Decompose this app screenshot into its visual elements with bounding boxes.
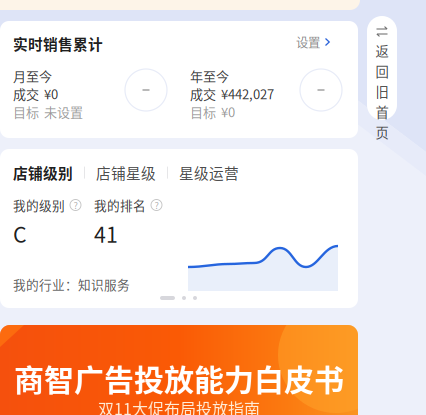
button[interactable]: 店铺星级 [96, 162, 156, 183]
button[interactable]: 店铺级别 [13, 162, 73, 183]
staticText: 目标 [190, 102, 216, 121]
staticText: 返 [375, 41, 388, 60]
staticText: 成交 [190, 84, 216, 103]
staticText: 年至今 [190, 66, 229, 85]
staticText: 双11大促布局投放指南 [98, 396, 260, 415]
staticText: C [13, 218, 27, 249]
staticText: ? [73, 198, 77, 212]
staticText: 目标 [13, 102, 39, 121]
staticText: 星级运营 [179, 162, 239, 183]
staticText: ¥442,027 [221, 84, 274, 103]
staticText: 页 [375, 122, 388, 141]
staticText: 回 [375, 61, 388, 81]
staticText: 我的级别 [13, 196, 65, 214]
staticText: 首 [375, 102, 388, 121]
staticText: ¥0 [221, 102, 235, 121]
staticText: 店铺级别 [13, 162, 73, 183]
staticText: 设置 [296, 33, 320, 51]
staticText: 月至今 [13, 66, 52, 85]
button[interactable]: 星级运营 [179, 162, 239, 183]
staticText: 未设置 [44, 102, 83, 121]
staticText: ? [154, 198, 158, 212]
button[interactable]: 设置 [296, 34, 348, 50]
staticText: 实时销售累计 [13, 33, 103, 54]
staticText: 我的排名 [94, 196, 146, 214]
staticText: 我的行业：知识服务 [13, 275, 130, 293]
staticText: 41 [94, 218, 118, 249]
staticText: 成交 [13, 84, 39, 103]
staticText: ¥0 [44, 84, 58, 103]
staticText: 店铺星级 [96, 162, 156, 183]
button[interactable]: 返回旧首页 [367, 16, 397, 120]
button[interactable]: 商智广告投放能力白皮书 [0, 325, 358, 415]
staticText: 商智广告投放能力白皮书 [14, 356, 344, 400]
staticText: 旧 [375, 82, 388, 101]
